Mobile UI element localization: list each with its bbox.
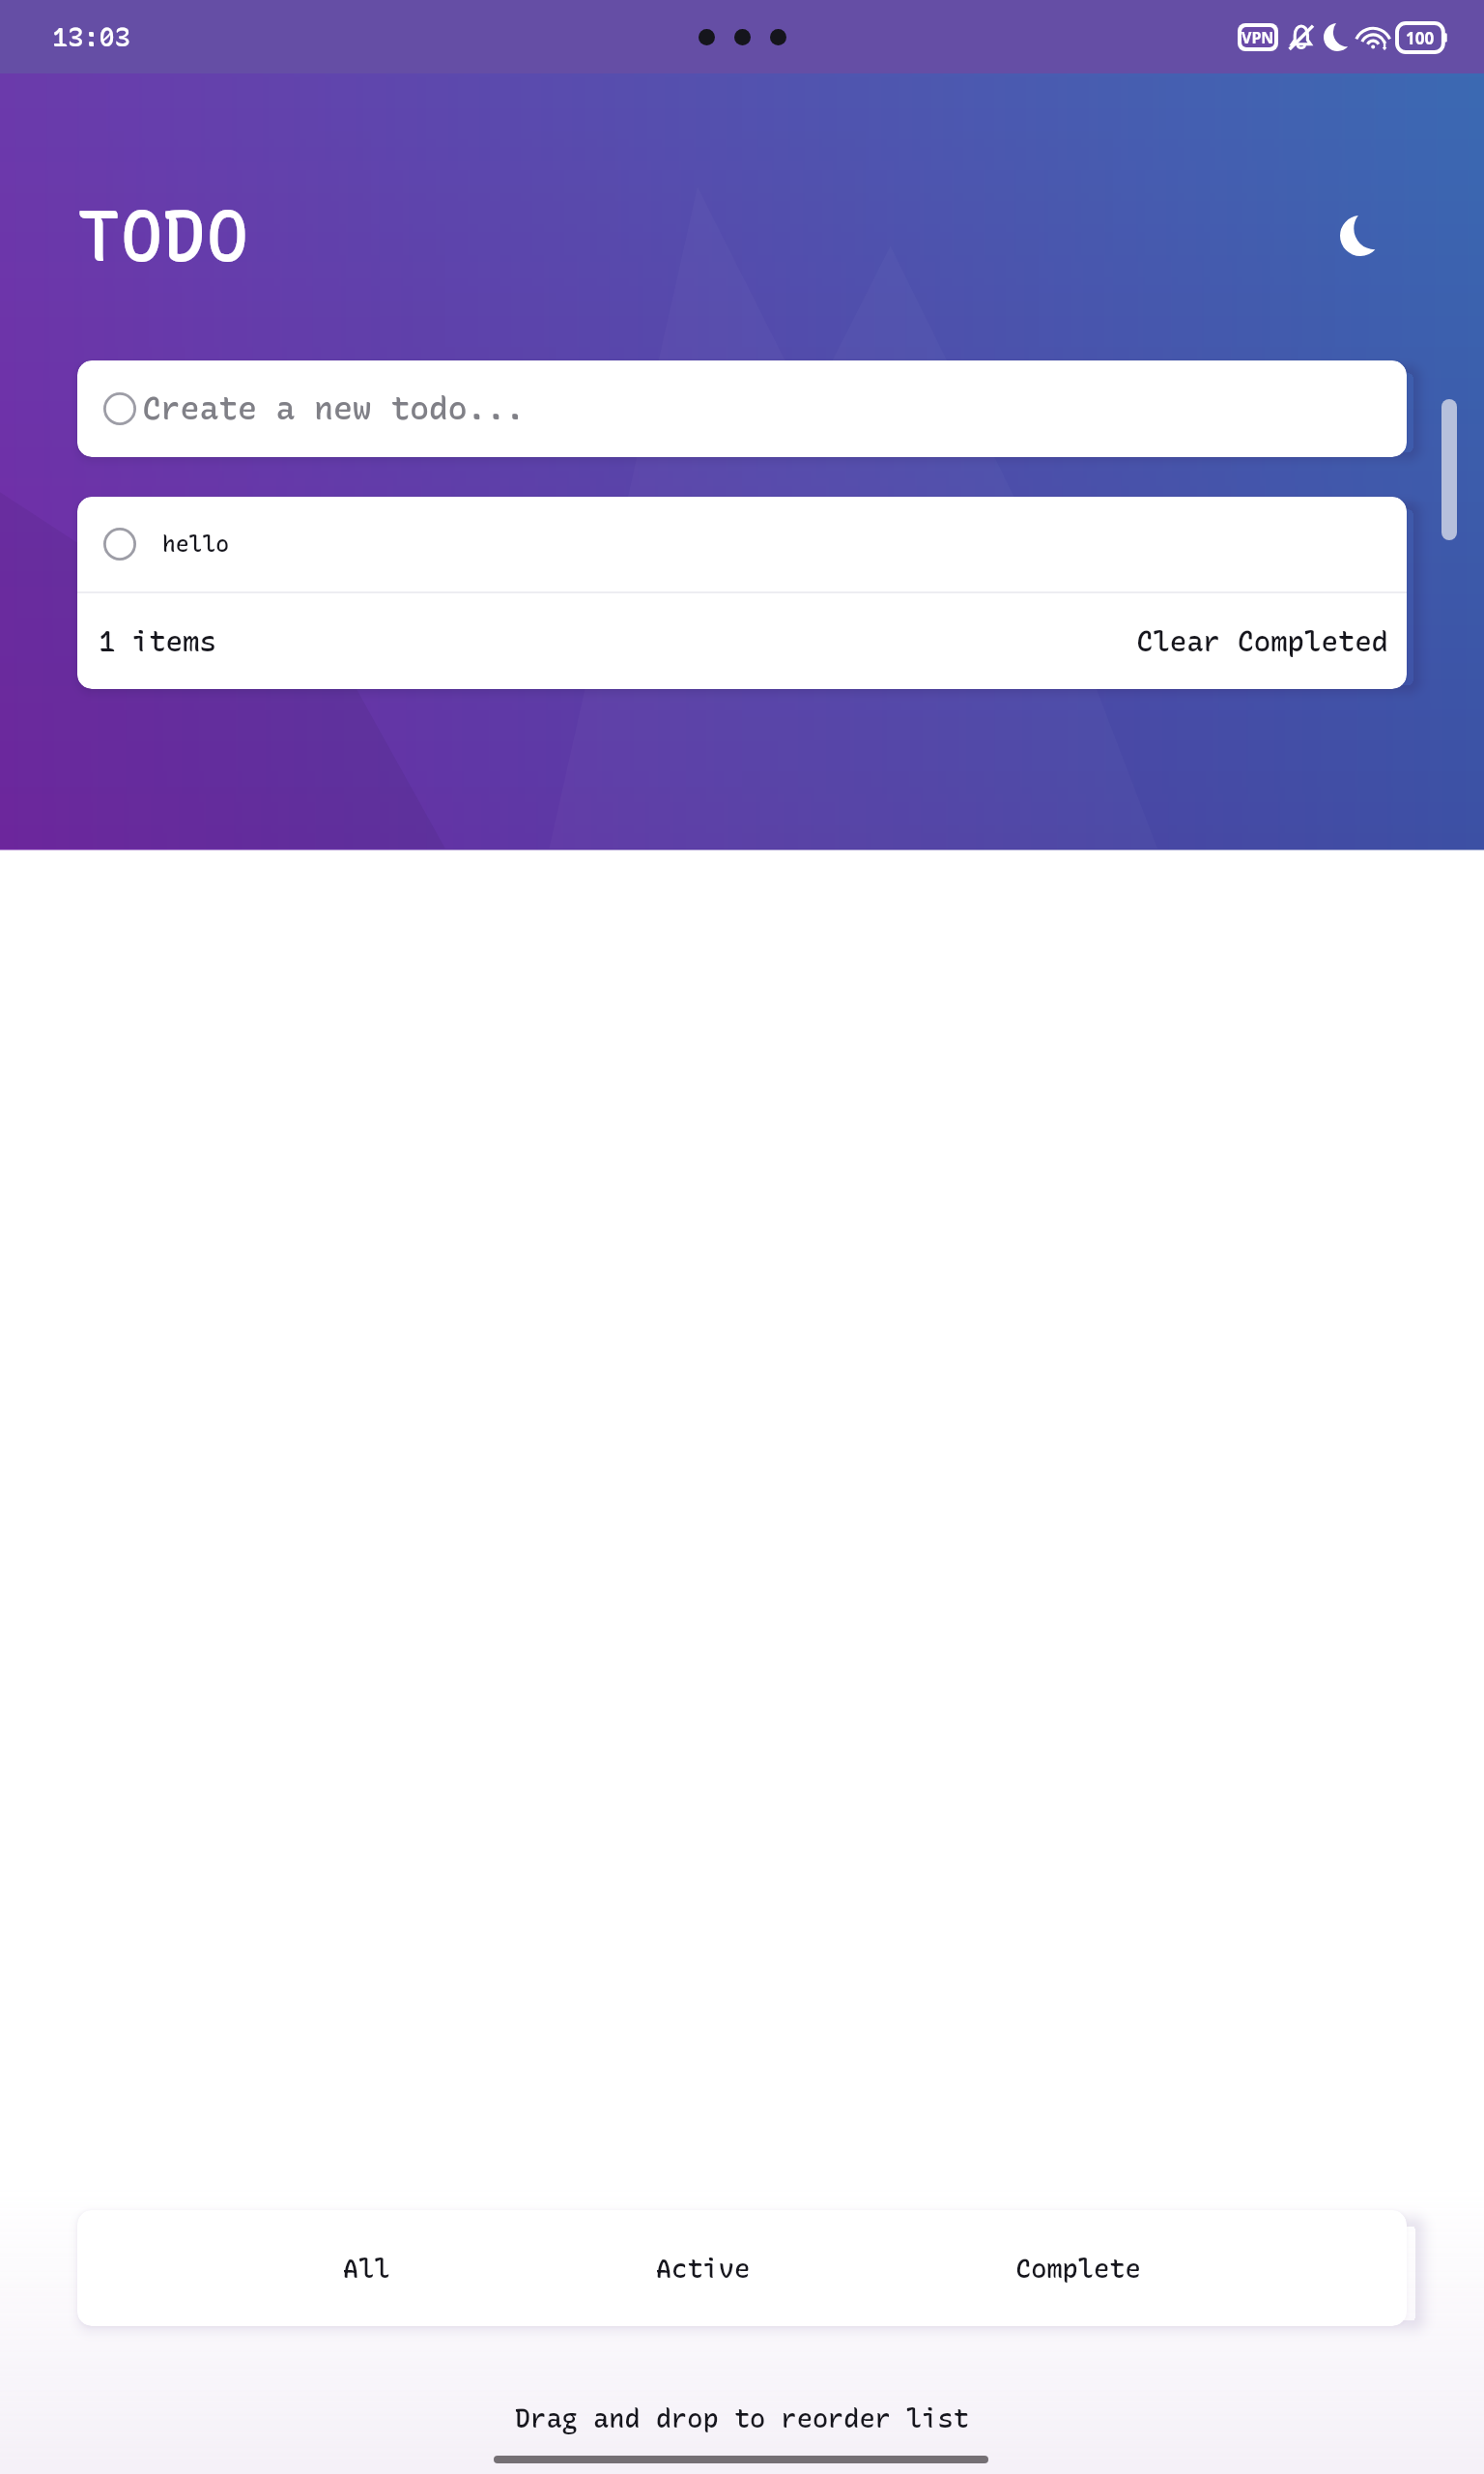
button[interactable]: Complete [1015, 2210, 1141, 2326]
button[interactable]: Toggle dark theme [1330, 206, 1390, 266]
staticText: Drag and drop to reorder list [515, 2402, 969, 2433]
staticText: TODO [77, 193, 249, 279]
button[interactable]: Active [656, 2210, 751, 2326]
button[interactable]: All [343, 2210, 390, 2326]
staticText: 13:03 [52, 21, 130, 52]
staticText: Create a new todo... [142, 389, 525, 428]
button[interactable]: Mark new todo complete [77, 360, 1407, 457]
staticText: VPN [1241, 27, 1274, 47]
staticText: Clear Completed [1136, 624, 1389, 658]
staticText: Active [656, 2253, 751, 2284]
staticText: hello [162, 531, 230, 558]
staticText: Complete [1015, 2253, 1141, 2284]
button[interactable]: Clear Completed [1132, 607, 1393, 676]
staticText: 1 items [99, 624, 216, 658]
button[interactable]: Toggle todo hello [77, 497, 1407, 591]
button[interactable]: Toggle todo hello [103, 528, 136, 561]
button[interactable]: Mark new todo complete [103, 392, 136, 425]
staticText: All [343, 2253, 390, 2284]
staticText: 100 [1406, 27, 1435, 49]
